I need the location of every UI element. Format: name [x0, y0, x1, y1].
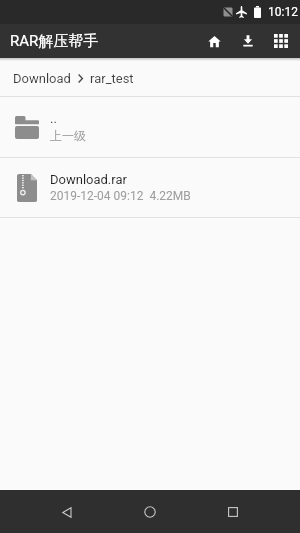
- button[interactable]: [50, 495, 84, 529]
- button[interactable]: [216, 495, 250, 529]
- staticText: RAR解压帮手: [10, 32, 99, 51]
- button[interactable]: [198, 24, 231, 58]
- button[interactable]: [264, 24, 297, 58]
- staticText: rar_test: [90, 71, 134, 86]
- staticText: 10:12: [268, 5, 298, 19]
- button[interactable]: [133, 495, 167, 529]
- staticText: 上一级: [50, 128, 86, 143]
- staticText: Download.rar: [50, 172, 127, 187]
- button[interactable]: Download: [0, 61, 300, 96]
- button[interactable]: ..: [0, 97, 300, 157]
- staticText: 2019-12-04 09:12 4.22MB: [50, 189, 191, 203]
- staticText: ..: [50, 111, 57, 126]
- button[interactable]: Download.rar: [0, 158, 300, 217]
- staticText: Download: [13, 71, 71, 86]
- button[interactable]: [231, 24, 264, 58]
